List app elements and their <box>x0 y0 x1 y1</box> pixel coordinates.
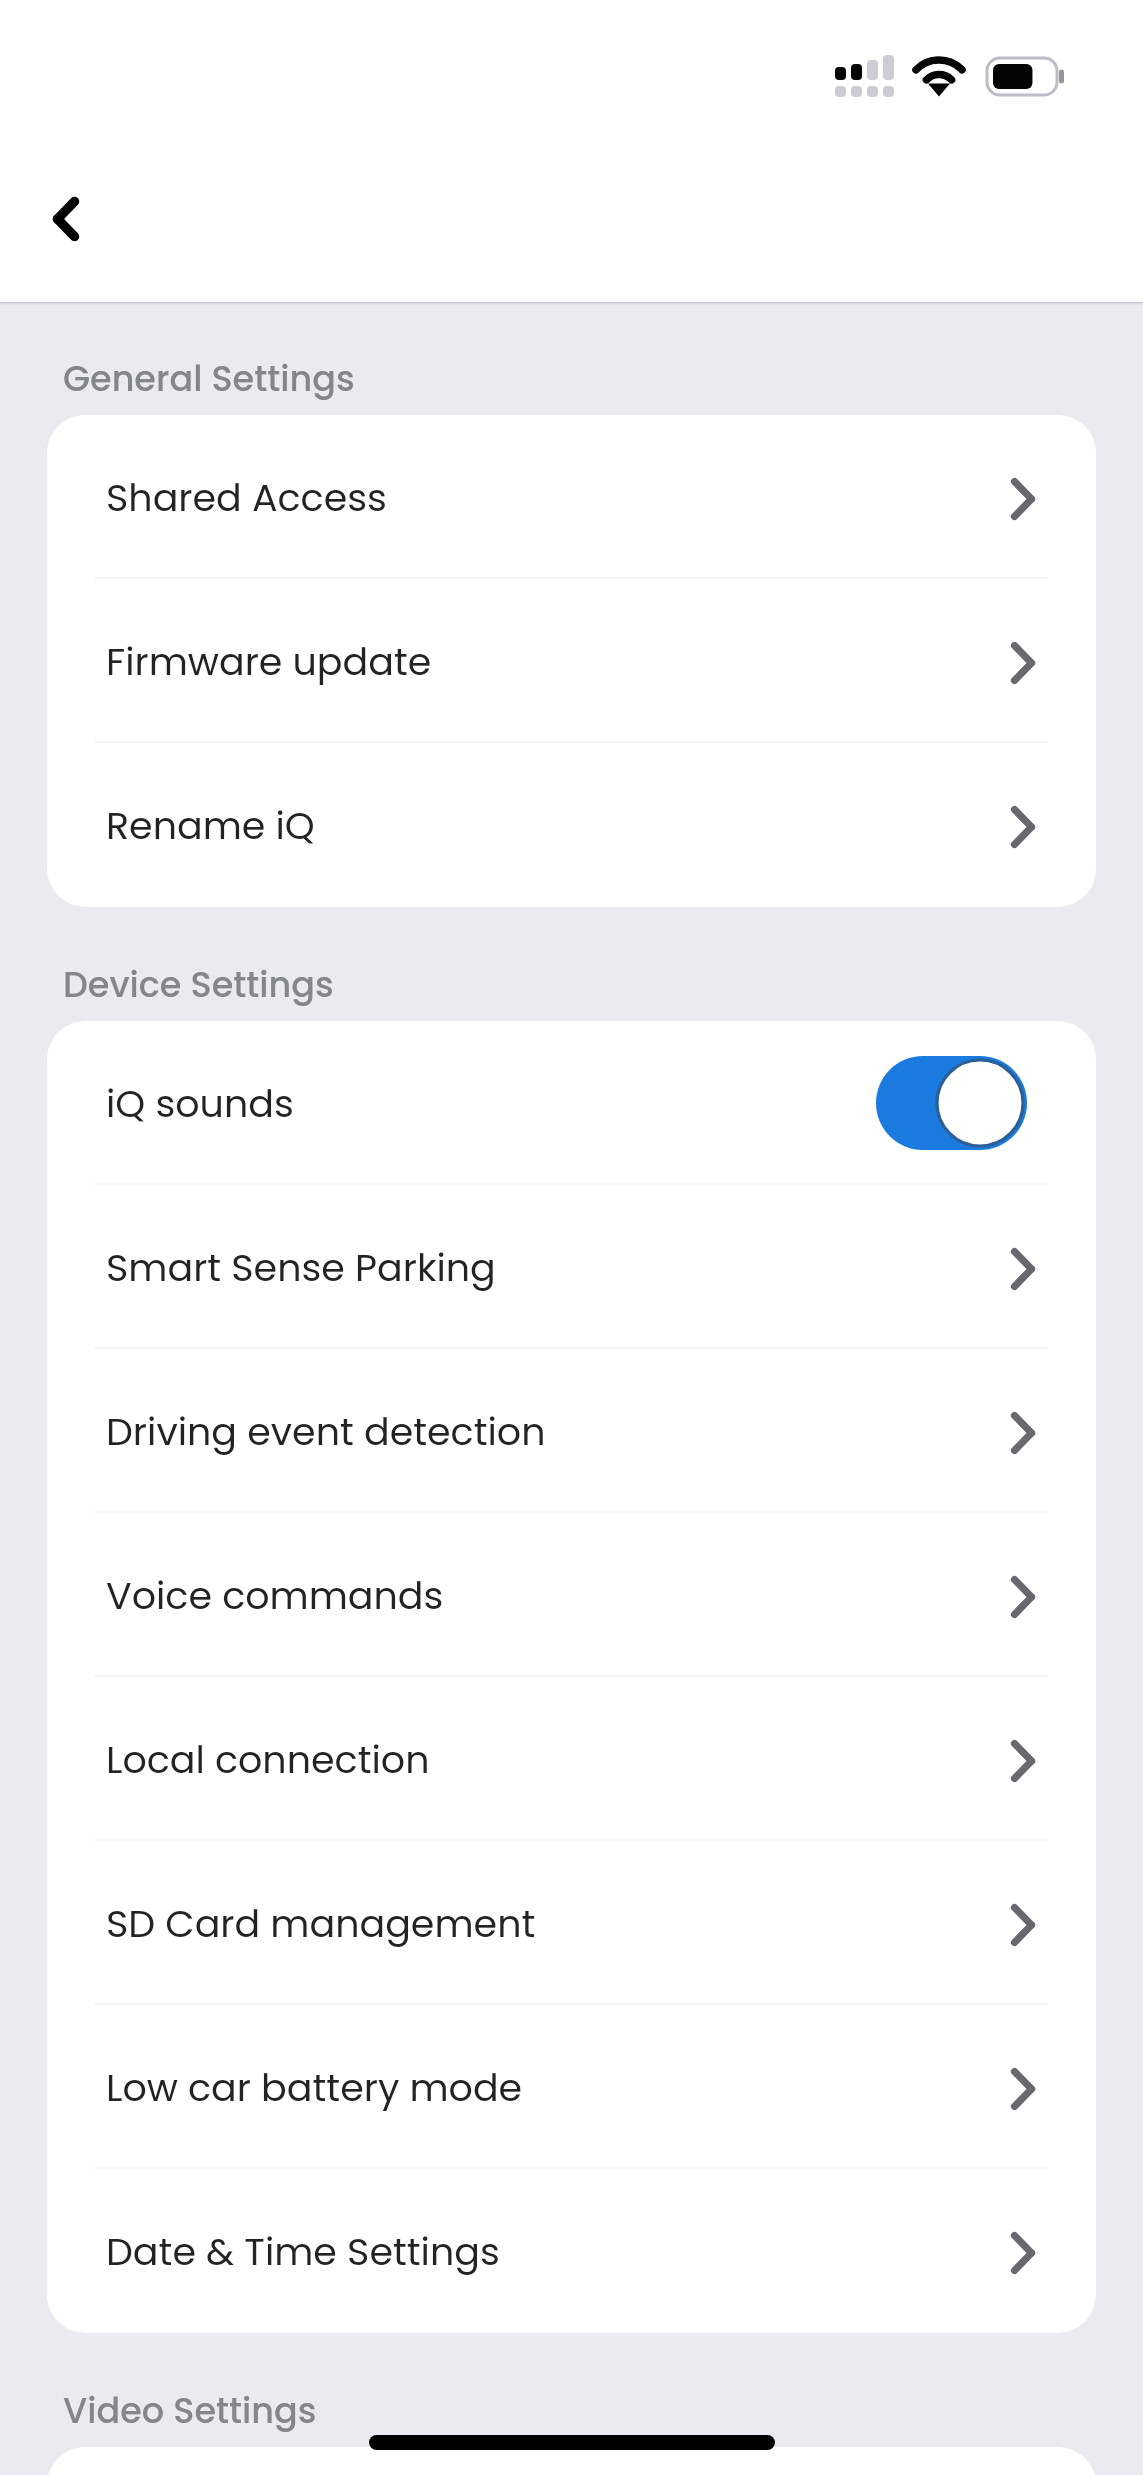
button[interactable]: Firmware update <box>47 579 1096 743</box>
staticText: iQ sounds <box>106 1077 294 1130</box>
staticText: Voice commands <box>106 1569 444 1622</box>
button[interactable]: Back <box>21 174 111 264</box>
staticText: Firmware update <box>106 635 432 688</box>
staticText: Date & Time Settings <box>106 2225 500 2278</box>
button[interactable]: Rename iQ <box>47 743 1096 907</box>
button[interactable]: Voice commands <box>47 1513 1096 1677</box>
button[interactable]: Smart Sense Parking <box>47 1185 1096 1349</box>
button[interactable]: iQ sounds <box>47 1021 1096 1185</box>
staticText: Shared Access <box>106 471 387 524</box>
staticText: Local connection <box>106 1733 430 1786</box>
staticText: Low car battery mode <box>106 2061 523 2114</box>
button[interactable]: Resolution <box>47 2447 1096 2475</box>
staticText: Driving event detection <box>106 1405 546 1458</box>
button[interactable]: Low car battery mode <box>47 2005 1096 2169</box>
staticText: Device Settings <box>63 960 334 1009</box>
button[interactable]: Driving event detection <box>47 1349 1096 1513</box>
staticText: General Settings <box>63 354 355 403</box>
staticText: SD Card management <box>106 1897 536 1950</box>
staticText: Smart Sense Parking <box>106 1241 496 1294</box>
other: Signal, Wi-Fi and battery status <box>835 48 1075 104</box>
button[interactable]: Shared Access <box>47 415 1096 579</box>
button[interactable]: Local connection <box>47 1677 1096 1841</box>
button[interactable]: SD Card management <box>47 1841 1096 2005</box>
button[interactable]: Date & Time Settings <box>47 2169 1096 2333</box>
staticText: Rename iQ <box>106 799 315 852</box>
staticText: Video Settings <box>63 2386 317 2435</box>
